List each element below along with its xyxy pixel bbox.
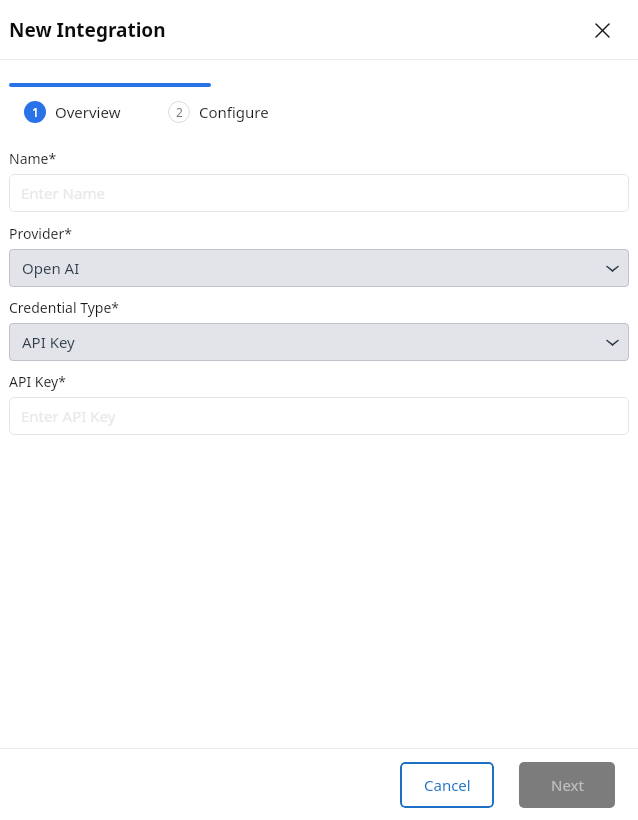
staticText: Cancel	[424, 775, 471, 795]
staticText: Next	[551, 775, 584, 795]
button[interactable]: Next	[519, 762, 615, 808]
staticText: API Key*	[9, 372, 66, 391]
button[interactable]: 2	[168, 101, 269, 123]
staticText: Name*	[9, 149, 57, 168]
staticText: Configure	[199, 102, 269, 122]
staticText: Enter API Key	[21, 406, 116, 426]
staticText: 2	[176, 104, 183, 120]
button[interactable]: Enter Name	[9, 174, 629, 212]
staticText: Enter Name	[21, 183, 105, 203]
button[interactable]: 1	[24, 101, 121, 123]
staticText: New Integration	[9, 17, 166, 43]
staticText: Provider*	[9, 224, 72, 243]
staticText: 1	[32, 104, 39, 120]
staticText: Open AI	[22, 258, 80, 278]
button[interactable]: API Key	[9, 323, 629, 361]
button[interactable]: Close	[589, 17, 615, 43]
staticText: API Key	[22, 332, 75, 352]
staticText: Overview	[55, 102, 121, 122]
staticText: Credential Type*	[9, 298, 120, 317]
button[interactable]: Cancel	[400, 762, 494, 808]
button[interactable]: Enter API Key	[9, 397, 629, 435]
button[interactable]: Open AI	[9, 249, 629, 287]
